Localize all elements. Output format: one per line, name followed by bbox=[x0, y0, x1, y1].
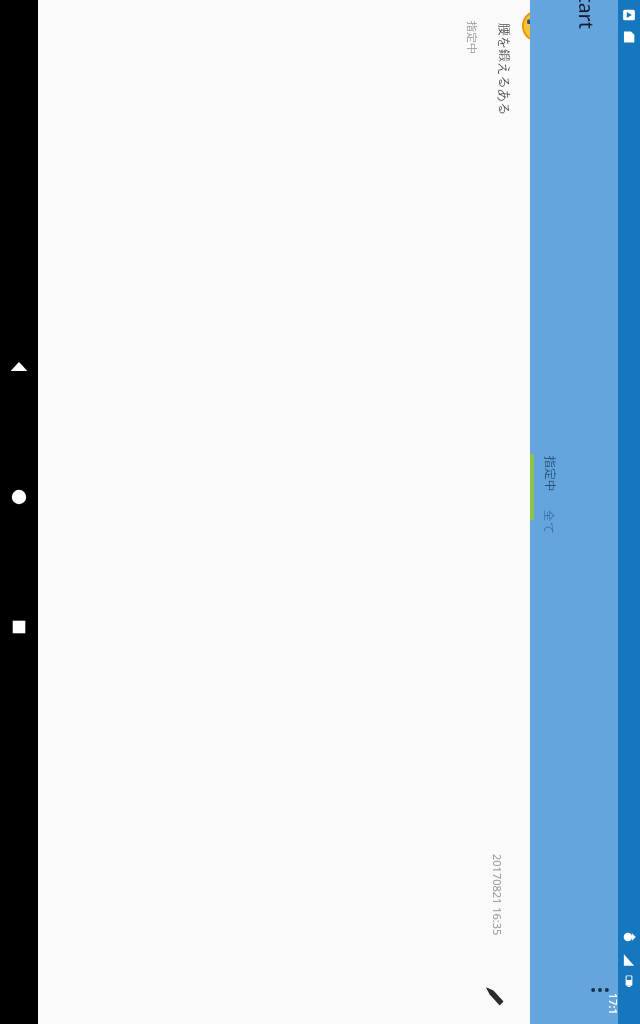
staticText: 指定中 bbox=[543, 456, 558, 492]
button[interactable]: Edit bbox=[480, 982, 508, 1010]
button[interactable]: 腰を鍛えるあるなしクイズ bbox=[430, 0, 530, 1024]
button[interactable]: 全て bbox=[530, 508, 590, 580]
button[interactable]: Recent apps bbox=[4, 612, 34, 642]
button[interactable]: Back bbox=[4, 352, 34, 382]
staticText: 指定中 bbox=[465, 21, 479, 54]
staticText: 17:13 bbox=[606, 993, 621, 1015]
staticText: 20170821 16:35 bbox=[490, 854, 505, 936]
button[interactable]: More options bbox=[582, 972, 618, 1008]
staticText: Start Apps Timer bbox=[573, 0, 599, 73]
staticText: 腰を鍛えるあるなしクイズ bbox=[497, 23, 513, 123]
button[interactable]: 指定中 bbox=[530, 440, 590, 528]
button[interactable]: Home bbox=[4, 482, 34, 512]
staticText: 全て bbox=[542, 510, 557, 535]
